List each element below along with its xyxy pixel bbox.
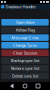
button[interactable]: Restore sync list: [1, 65, 49, 71]
staticText: Yellow Flag: [15, 27, 34, 33]
button[interactable]: Home: [23, 84, 27, 88]
button[interactable]: Backup sync list: [1, 57, 49, 64]
button[interactable]: Open Valve: [1, 19, 49, 26]
staticText: Open Valve: [15, 20, 34, 25]
staticText: Database Handler: [5, 4, 36, 9]
staticText: Clear Session: [13, 50, 37, 55]
button[interactable]: Recents: [36, 84, 40, 88]
button[interactable]: Message Crew: [1, 34, 49, 41]
button[interactable]: Clear Session: [1, 50, 49, 56]
button[interactable]: Yellow Flag: [1, 27, 49, 33]
button[interactable]: Delete sync list: [1, 73, 49, 79]
staticText: Change Tyres: [13, 43, 37, 48]
staticText: Restore sync list: [11, 65, 39, 71]
button[interactable]: Change Tyres: [1, 42, 49, 49]
button[interactable]: Back: [10, 83, 14, 88]
staticText: Delete sync list: [12, 73, 38, 78]
staticText: Backup sync list: [11, 58, 39, 63]
staticText: Message Crew: [11, 35, 38, 40]
